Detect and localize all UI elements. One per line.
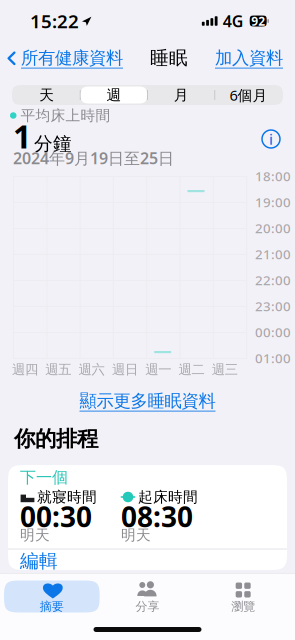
- button[interactable]: 所有健康資料: [7, 41, 123, 75]
- staticText: 週六: [79, 361, 105, 378]
- staticText: 週三: [212, 361, 238, 378]
- button[interactable]: 分享: [100, 580, 195, 612]
- staticText: 01:00: [255, 349, 291, 367]
- staticText: 所有健康資料: [21, 47, 123, 69]
- staticText: 加入資料: [215, 47, 283, 69]
- staticText: 顯示更多睡眠資料: [79, 390, 215, 412]
- staticText: 週: [106, 86, 121, 104]
- staticText: 4G: [223, 10, 244, 32]
- button[interactable]: 摘要: [4, 580, 100, 612]
- staticText: 分享: [135, 599, 159, 614]
- staticText: 編輯: [20, 549, 58, 572]
- staticText: 睡眠: [150, 46, 188, 69]
- staticText: 2024年9月19日至25日: [13, 147, 174, 169]
- staticText: 平均床上時間: [20, 106, 110, 124]
- staticText: 23:00: [255, 297, 291, 315]
- staticText: 天: [39, 86, 54, 104]
- button[interactable]: 加入資料: [215, 41, 283, 75]
- staticText: 就寢時間: [37, 488, 97, 506]
- button[interactable]: 天: [13, 86, 80, 103]
- staticText: 22:00: [255, 271, 291, 289]
- staticText: 21:00: [255, 245, 291, 263]
- staticText: 15:22: [30, 9, 79, 33]
- staticText: 瀏覽: [231, 599, 255, 614]
- staticText: 起床時間: [138, 488, 198, 506]
- staticText: 分鐘: [34, 132, 72, 155]
- staticText: 19:00: [255, 193, 291, 211]
- staticText: 92: [251, 13, 265, 29]
- staticText: 週五: [45, 361, 71, 378]
- button[interactable]: 週: [81, 86, 147, 103]
- staticText: 6個月: [229, 85, 267, 105]
- button[interactable]: 瀏覽: [195, 580, 291, 612]
- staticText: 週日: [112, 361, 138, 378]
- button[interactable]: Info: [262, 130, 280, 148]
- staticText: i: [269, 129, 273, 149]
- staticText: 摘要: [40, 599, 64, 614]
- staticText: 下一個: [20, 468, 68, 487]
- staticText: 你的排程: [14, 426, 98, 452]
- staticText: 明天: [121, 526, 151, 544]
- staticText: 00:30: [20, 498, 92, 535]
- staticText: 20:00: [255, 219, 291, 237]
- button[interactable]: 月: [148, 86, 214, 103]
- staticText: 1: [13, 115, 31, 157]
- staticText: 週一: [145, 361, 171, 378]
- button[interactable]: 6個月: [215, 86, 281, 103]
- button[interactable]: 顯示更多睡眠資料: [0, 392, 295, 410]
- button[interactable]: 編輯: [8, 549, 287, 572]
- staticText: 週二: [178, 361, 204, 378]
- staticText: 明天: [20, 526, 50, 544]
- staticText: 00:00: [255, 323, 291, 341]
- staticText: 18:00: [255, 167, 291, 185]
- staticText: 月: [174, 86, 189, 104]
- staticText: 08:30: [121, 498, 193, 535]
- staticText: 週四: [12, 361, 38, 378]
